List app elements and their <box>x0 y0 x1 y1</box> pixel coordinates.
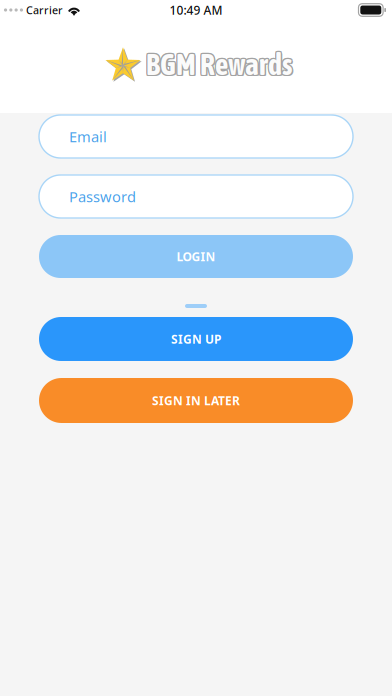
staticText: Carrier <box>26 3 63 17</box>
staticText: BGM Rewards <box>145 47 291 81</box>
staticText: BGM Rewards <box>146 49 292 82</box>
staticText: BGM Rewards <box>147 47 293 81</box>
button[interactable]: Password <box>39 175 353 218</box>
staticText: BGM Rewards <box>145 48 291 82</box>
staticText: LOGIN <box>176 248 215 264</box>
button[interactable]: LOGIN <box>39 235 353 278</box>
staticText: SIGN IN LATER <box>152 392 240 408</box>
button[interactable]: Email <box>39 115 353 158</box>
staticText: BGM Rewards <box>147 46 293 80</box>
button[interactable]: SIGN IN LATER <box>39 378 353 423</box>
staticText: 10:49 AM <box>169 2 222 18</box>
button[interactable]: SIGN UP <box>39 317 353 361</box>
staticText: Email <box>69 127 107 146</box>
staticText: BGM Rewards <box>145 46 291 80</box>
staticText: BGM Rewards <box>147 49 293 82</box>
staticText: BGM Rewards <box>146 47 292 81</box>
staticText: SIGN UP <box>171 331 221 347</box>
staticText: Password <box>69 187 136 206</box>
staticText: BGM Rewards <box>146 46 292 80</box>
